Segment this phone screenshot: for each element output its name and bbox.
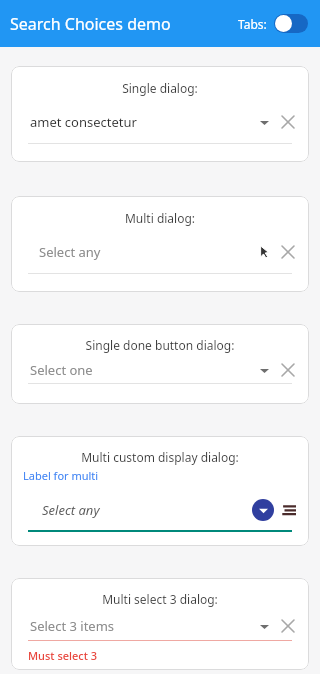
staticText: Multi custom display dialog:: [11, 449, 309, 465]
button[interactable]: Multi custom display dialog:: [11, 436, 309, 546]
button[interactable]: Options: [279, 500, 299, 520]
staticText: Select any: [39, 243, 254, 261]
staticText: Select any: [42, 501, 252, 519]
staticText: amet consectetur: [30, 113, 254, 131]
staticText: Must select 3: [28, 648, 98, 663]
button[interactable]: Multi select 3 dialog:: [11, 578, 309, 670]
staticText: Multi dialog:: [11, 210, 309, 226]
staticText: Single dialog:: [11, 80, 309, 96]
button[interactable]: Single dialog:: [11, 66, 309, 162]
button[interactable]: Clear selection: [277, 111, 299, 133]
staticText: Select one: [30, 361, 254, 379]
staticText: Select 3 items: [30, 617, 254, 635]
button[interactable]: Multi dialog:: [11, 196, 309, 292]
staticText: Multi select 3 dialog:: [11, 591, 309, 607]
button[interactable]: Open dropdown: [254, 360, 274, 380]
staticText: Search Choices demo: [10, 13, 171, 35]
button[interactable]: Clear selection: [277, 241, 299, 263]
button[interactable]: Tabs:: [234, 8, 312, 39]
button[interactable]: Clear selection: [277, 615, 299, 637]
button[interactable]: Open dropdown: [252, 499, 274, 521]
staticText: Tabs:: [238, 16, 267, 32]
button[interactable]: Clear selection: [277, 359, 299, 381]
staticText: Label for multi: [23, 468, 99, 483]
button[interactable]: Open dropdown: [254, 112, 274, 132]
staticText: Single done button dialog:: [11, 337, 309, 353]
button[interactable]: Single done button dialog:: [11, 324, 309, 404]
button[interactable]: Open dropdown: [254, 616, 274, 636]
